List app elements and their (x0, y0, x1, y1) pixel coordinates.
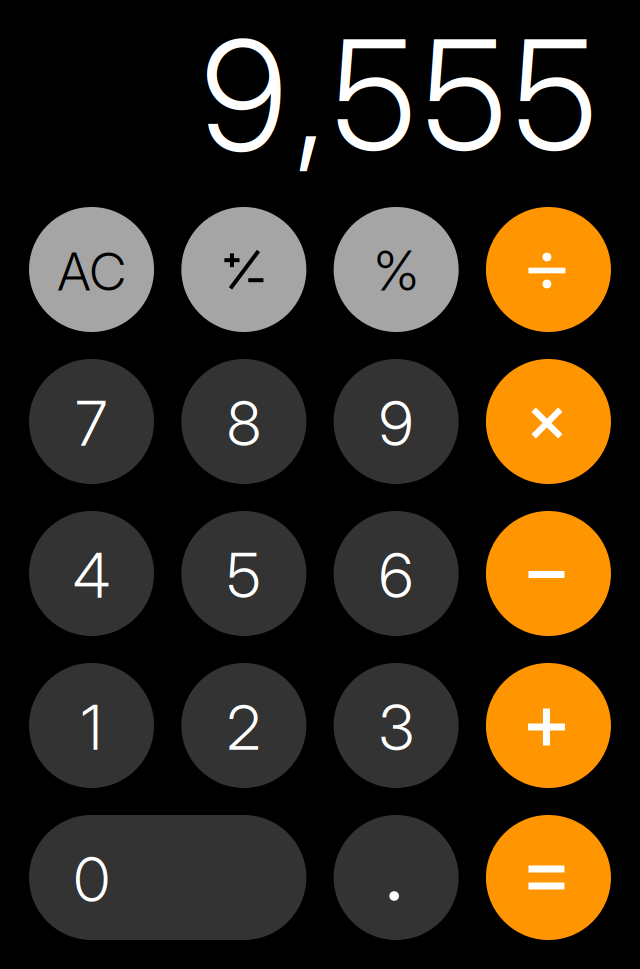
button[interactable]: Decimal point (334, 815, 459, 940)
staticText: 9 (201, 3, 287, 187)
staticText: 5 (227, 538, 261, 613)
button[interactable]: Plus minus (181, 207, 306, 332)
staticText: 7 (76, 386, 108, 461)
button[interactable]: 0 (29, 815, 306, 940)
staticText: 9 (379, 386, 414, 461)
staticText: 5 (422, 3, 506, 187)
button[interactable]: 7 (29, 359, 154, 484)
button[interactable]: Add (486, 663, 611, 788)
button[interactable]: 5 (181, 511, 306, 636)
button[interactable]: 1 (29, 663, 154, 788)
staticText: 2 (227, 690, 261, 765)
staticText: 5 (332, 3, 416, 187)
button[interactable]: Subtract (486, 511, 611, 636)
staticText: 8 (227, 386, 261, 461)
staticText: 1 (81, 690, 102, 765)
button[interactable]: Multiply (486, 359, 611, 484)
staticText: 6 (379, 538, 414, 613)
button[interactable]: 2 (181, 663, 306, 788)
staticText: 5 (513, 3, 597, 187)
staticText: 3 (379, 690, 414, 765)
button[interactable]: 3 (334, 663, 459, 788)
staticText: 0 (74, 842, 110, 917)
button[interactable]: Equals (486, 815, 611, 940)
staticText: AC (58, 240, 126, 303)
button[interactable]: 6 (334, 511, 459, 636)
staticText: , (294, 3, 326, 187)
staticText: % (374, 237, 419, 303)
button[interactable]: 9 (334, 359, 459, 484)
button[interactable]: Divide (486, 207, 611, 332)
button[interactable]: 8 (181, 359, 306, 484)
button[interactable]: % (334, 207, 459, 332)
button[interactable]: 4 (29, 511, 154, 636)
staticText: 4 (73, 538, 110, 613)
button[interactable]: AC (29, 207, 154, 332)
